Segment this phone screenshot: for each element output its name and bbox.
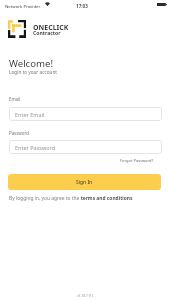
staticText: Welcome! [9,57,53,70]
button[interactable]: Enter Email [9,107,162,121]
staticText: v1.10.1 (1) [77,293,93,297]
other: Battery [157,3,167,6]
staticText: Enter Password [15,144,56,151]
staticText: ONECLICK [33,23,69,33]
button[interactable]: By logging in, you agree to the terms an… [9,195,133,202]
staticText: Network Provider [5,4,41,10]
button[interactable]: Enter Password [9,140,162,154]
staticText: Password [9,130,29,136]
button[interactable]: Forgot Password? [119,157,155,164]
staticText: 17:03 [76,3,88,9]
staticText: Email [9,96,21,102]
staticText: Sign In [76,179,93,186]
staticText: Forgot Password? [120,158,154,163]
staticText: Contractor [33,30,61,37]
staticText: Enter Email [15,111,45,118]
other: Wifi [45,2,50,6]
button[interactable]: Sign In [8,174,161,190]
staticText: Login to your account [9,69,57,75]
staticText: By logging in, you agree to the terms an… [9,195,133,202]
